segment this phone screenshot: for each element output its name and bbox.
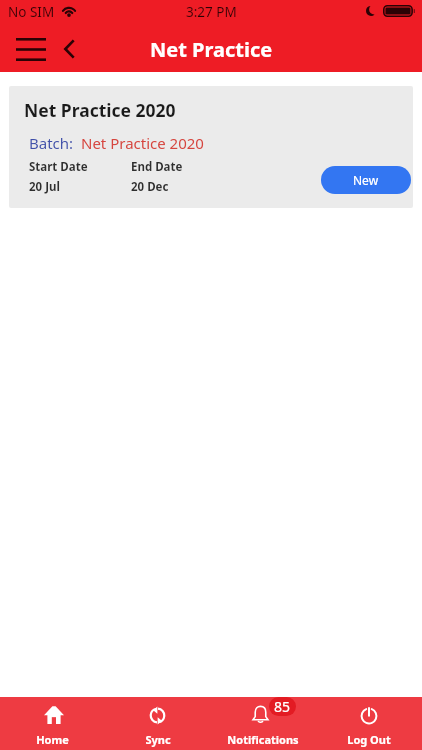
staticText: 3:27 PM	[186, 3, 237, 21]
button[interactable]: Menu	[0, 26, 48, 72]
staticText: No SIM	[8, 3, 55, 21]
button[interactable]: 85	[210, 697, 316, 747]
button[interactable]: Net Practice 2020	[9, 86, 413, 208]
button[interactable]: Sync	[105, 697, 210, 747]
staticText: Start Date	[29, 159, 88, 175]
staticText: Batch:	[29, 133, 74, 153]
button[interactable]: Log Out	[316, 697, 422, 747]
staticText: Net Practice 2020	[24, 98, 176, 122]
staticText: Notifications	[227, 732, 299, 747]
button[interactable]: New	[321, 166, 411, 194]
staticText: New	[353, 172, 379, 188]
staticText: 20 Jul	[29, 179, 60, 195]
staticText: Sync	[145, 732, 171, 747]
staticText: Net Practice 2020	[81, 133, 204, 153]
staticText: Net Practice	[150, 36, 273, 63]
staticText: 85	[274, 697, 291, 716]
staticText: End Date	[131, 159, 183, 175]
button[interactable]: Back	[48, 26, 88, 72]
button[interactable]: Home	[0, 697, 105, 747]
staticText: 20 Dec	[131, 179, 169, 195]
staticText: Home	[36, 732, 69, 747]
staticText: Log Out	[347, 732, 391, 747]
